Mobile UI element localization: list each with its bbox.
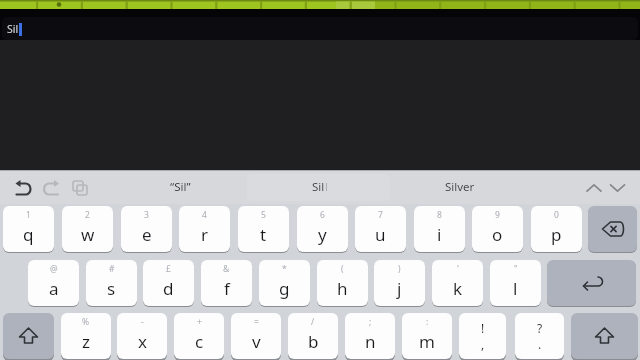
staticText: @ [50,263,58,275]
staticText: + [197,316,202,328]
button[interactable] [3,313,54,359]
button[interactable]: 4 [179,206,230,252]
button[interactable] [571,313,638,359]
button[interactable]: * [259,260,310,306]
staticText: r [201,223,209,246]
button[interactable]: Silver [390,170,530,204]
button[interactable]: ; [345,313,395,359]
staticText: a [49,277,59,300]
staticText: m [419,330,435,353]
staticText: j [397,277,402,300]
staticText: ! [481,320,485,336]
button[interactable]: Sil [250,170,390,204]
staticText: 4 [202,209,207,221]
staticText: Silver [445,179,475,195]
staticText: 2 [85,209,90,221]
staticText: b [308,330,319,353]
staticText: ( [341,263,344,275]
staticText: w [81,223,95,246]
staticText: . [538,336,542,352]
button[interactable]: 8 [414,206,465,252]
button[interactable]: 6 [297,206,348,252]
staticText: 9 [495,209,500,221]
staticText: g [279,277,290,300]
staticText: o [492,223,503,246]
button[interactable]: 2 [62,206,113,252]
button[interactable]: 3 [121,206,172,252]
staticText: q [23,223,34,246]
staticText: : [426,316,429,328]
button[interactable] [588,206,637,252]
staticText: ' [457,263,459,275]
button[interactable]: ) [374,260,425,306]
staticText: % [82,316,90,328]
staticText: e [142,223,152,246]
button[interactable]: Sil [2,17,638,40]
button[interactable] [547,260,636,306]
staticText: s [107,277,116,300]
staticText: * [282,263,287,275]
staticText: = [254,316,259,328]
staticText: " [514,263,518,275]
staticText: , [481,336,485,352]
button[interactable]: @ [28,260,79,306]
button[interactable]: % [61,313,111,359]
button[interactable]: + [174,313,224,359]
button[interactable]: ' [432,260,483,306]
staticText: 8 [437,209,442,221]
staticText: u [375,223,386,246]
button[interactable]: ( [317,260,368,306]
staticText: l [325,179,328,195]
staticText: y [318,223,327,246]
staticText: p [551,223,562,246]
staticText: Sil [312,179,325,195]
button[interactable]: 5 [238,206,289,252]
staticText: 3 [144,209,149,221]
staticText: £ [166,263,171,275]
staticText: f [224,277,230,300]
button[interactable]: = [231,313,281,359]
staticText: ) [398,263,401,275]
button[interactable]: : [402,313,452,359]
staticText: # [109,263,115,275]
button[interactable]: “Sil” [110,170,250,204]
staticText: z [82,330,90,353]
staticText: - [141,316,144,328]
button[interactable]: / [288,313,338,359]
staticText: t [260,223,267,246]
staticText: “Sil” [170,179,191,195]
staticText: 1 [26,209,31,221]
staticText: n [365,330,376,353]
staticText: 6 [320,209,325,221]
button[interactable]: 9 [472,206,523,252]
staticText: c [195,330,204,353]
staticText: / [311,316,315,328]
staticText: d [163,277,174,300]
staticText: h [337,277,348,300]
button[interactable]: ? [515,313,564,359]
button[interactable]: # [86,260,137,306]
button[interactable]: ! [459,313,506,359]
button[interactable]: & [201,260,252,306]
staticText: l [513,277,518,300]
staticText: 0 [554,209,559,221]
button[interactable]: - [117,313,167,359]
staticText: x [138,330,147,353]
staticText: 7 [378,209,383,221]
button[interactable]: " [490,260,541,306]
staticText: k [453,277,463,300]
staticText: v [252,330,261,353]
staticText: ? [537,320,543,336]
staticText: i [437,223,442,246]
button[interactable]: 0 [531,206,582,252]
button[interactable]: 1 [3,206,54,252]
staticText: ; [369,316,372,328]
staticText: & [223,263,230,275]
button[interactable]: £ [143,260,194,306]
staticText: Sil [7,22,19,36]
button[interactable]: 7 [355,206,406,252]
staticText: 5 [261,209,266,221]
